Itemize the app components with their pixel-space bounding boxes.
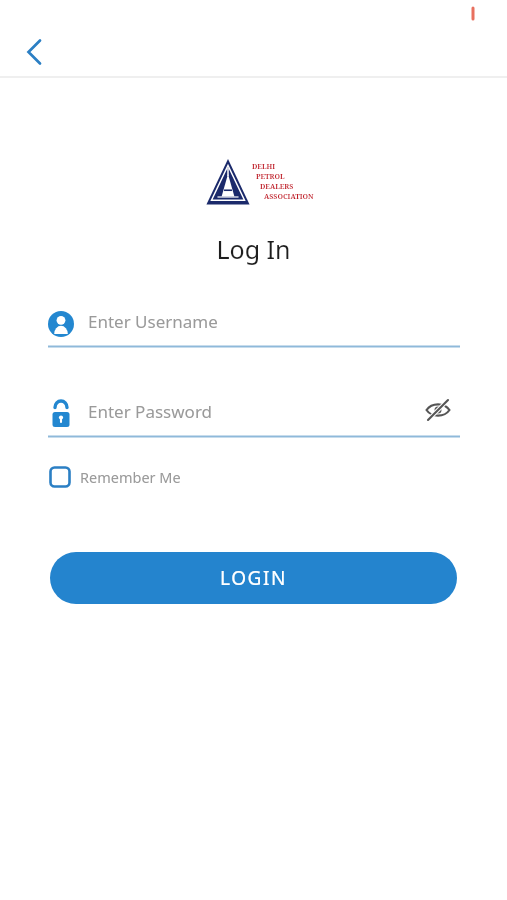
button[interactable]: Enter Username [48, 300, 460, 348]
staticText: Remember Me [80, 467, 181, 487]
staticText: Log In [0, 232, 507, 266]
button[interactable]: Enter Password [48, 390, 460, 438]
staticText: Enter Username [88, 310, 218, 333]
staticText: DEALERS [260, 182, 294, 192]
staticText: PETROL [256, 172, 285, 182]
staticText: DELHI [252, 162, 276, 172]
button[interactable]: Remember Me [48, 462, 181, 492]
staticText: ASSOCIATION [264, 192, 314, 202]
button[interactable]: Back [12, 30, 56, 74]
button[interactable]: LOGIN [50, 552, 457, 604]
button[interactable]: Show password [418, 390, 458, 430]
staticText: Enter Password [88, 400, 213, 423]
staticText: LOGIN [220, 565, 288, 591]
